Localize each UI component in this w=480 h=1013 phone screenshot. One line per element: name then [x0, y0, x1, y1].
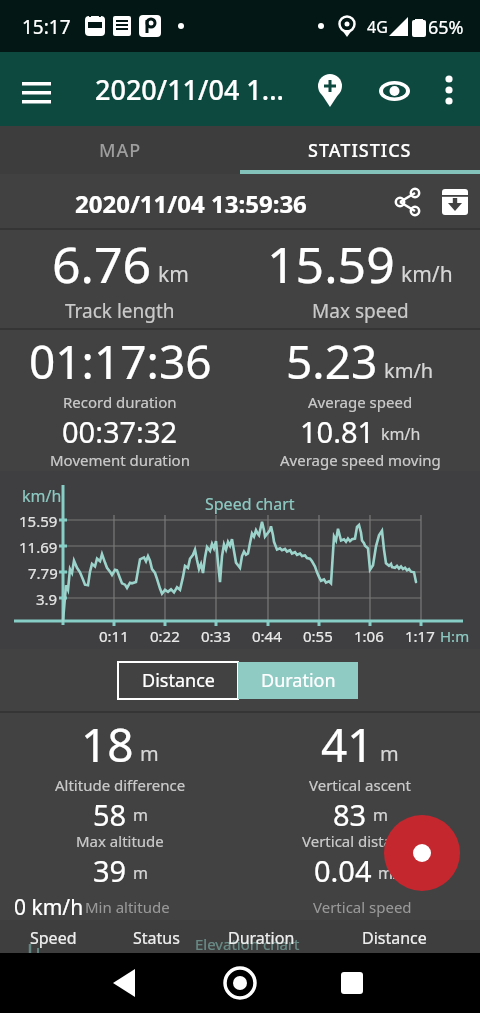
button[interactable] [324, 959, 380, 1007]
staticText: 4G [367, 16, 388, 38]
staticText: 0:11 [99, 626, 129, 646]
staticText: Record duration [63, 392, 177, 412]
staticText: 5.23 [286, 330, 378, 392]
staticText: km/h [22, 485, 62, 507]
staticText: 0.04 [314, 851, 372, 889]
staticText: Speed chart [205, 493, 295, 515]
staticText: Vertical ascent [309, 775, 411, 795]
staticText: 15.59 [267, 230, 395, 298]
button[interactable] [10, 77, 60, 117]
staticText: MAP [99, 138, 142, 163]
staticText: 6.76 [52, 230, 152, 298]
staticText: 1:06 [354, 626, 384, 646]
staticText: 41 [321, 713, 374, 775]
staticText: 0:44 [252, 626, 282, 646]
staticText: Status [133, 927, 180, 949]
button[interactable] [428, 69, 472, 113]
staticText: Speed [30, 927, 77, 949]
staticText: 83 [333, 795, 367, 831]
staticText: m/s [378, 862, 407, 884]
staticText: Duration [261, 668, 336, 693]
button[interactable] [305, 69, 353, 113]
staticText: m [133, 862, 148, 884]
staticText: Altitude difference [55, 775, 186, 795]
staticText: 18 [81, 713, 134, 775]
staticText: m [140, 740, 159, 767]
staticText: 39 [93, 851, 127, 889]
staticText: 0:55 [303, 626, 333, 646]
staticText: 15:17 [22, 14, 71, 40]
staticText: km [158, 260, 189, 289]
button[interactable]: STATISTICS [240, 126, 480, 174]
staticText: 1:17 [405, 626, 435, 646]
staticText: H:m [440, 626, 470, 646]
staticText: Track length [65, 298, 175, 324]
staticText: Max altitude [76, 831, 164, 851]
staticText: 0:33 [201, 626, 231, 646]
button[interactable] [370, 69, 418, 113]
button[interactable] [96, 959, 152, 1007]
staticText: Movement duration [50, 450, 190, 470]
staticText: km/h [381, 423, 421, 445]
staticText: Vertical distance [302, 831, 418, 851]
staticText: 10.81 [300, 412, 375, 450]
staticText: 11.69 [19, 537, 58, 557]
staticText: 58 [93, 795, 127, 831]
staticText: km/h [384, 357, 434, 384]
button[interactable]: Duration [238, 662, 358, 699]
button[interactable] [388, 189, 424, 219]
button[interactable] [438, 187, 472, 217]
staticText: Average speed moving [280, 450, 441, 470]
button[interactable] [384, 815, 460, 891]
staticText: Distance [142, 668, 215, 693]
staticText: Elevation chart [195, 934, 300, 954]
staticText: Max speed [312, 298, 409, 324]
staticText: Duration [228, 927, 295, 949]
staticText: m [373, 804, 388, 826]
staticText: Min altitude [85, 897, 170, 917]
staticText: km/h [401, 260, 453, 289]
staticText: 7.79 [28, 563, 58, 583]
staticText: Vertical speed [313, 897, 412, 917]
staticText: 3.9 [36, 589, 58, 609]
staticText: Average speed [308, 392, 413, 412]
button[interactable]: Distance [118, 662, 238, 699]
staticText: 0 km/h [14, 893, 84, 922]
staticText: 2020/11/04 13:59:36 [75, 187, 307, 220]
staticText: STATISTICS [308, 138, 412, 163]
staticText: Distance [362, 927, 427, 949]
staticText: 00:37:32 [62, 412, 178, 450]
staticText: 0:22 [150, 626, 180, 646]
staticText: 01:17:36 [29, 330, 212, 392]
staticText: m [380, 740, 399, 767]
button[interactable] [212, 959, 268, 1007]
staticText: 2020/11/04 1... [95, 71, 284, 108]
button[interactable]: MAP [0, 126, 240, 174]
staticText: 15.59 [19, 511, 58, 531]
staticText: 65% [428, 15, 464, 40]
staticText: m [133, 804, 148, 826]
